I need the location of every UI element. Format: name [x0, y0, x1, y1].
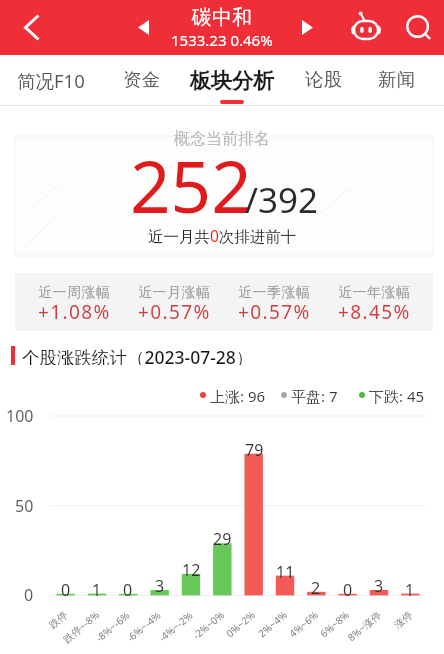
staticText: 0: [61, 579, 71, 601]
staticText: 1: [405, 579, 415, 601]
button[interactable]: 论股: [276, 55, 370, 106]
staticText: 11: [276, 561, 295, 583]
staticText: 0: [24, 584, 34, 606]
staticText: -4%~-2%: [156, 608, 196, 645]
button[interactable]: 下跌: 45: [359, 386, 425, 404]
staticText: 上涨: 96: [210, 386, 266, 404]
staticText: 2: [311, 577, 321, 599]
staticText: 100: [6, 405, 34, 427]
button[interactable]: 近一年涨幅: [324, 280, 424, 324]
staticText: 79: [245, 439, 264, 461]
staticText: 0: [123, 579, 133, 601]
staticText: 4%~6%: [286, 608, 321, 640]
staticText: 跌停: [46, 608, 70, 631]
button[interactable]: 近一周涨幅: [24, 280, 124, 324]
staticText: 近一季涨幅: [238, 284, 310, 302]
staticText: -8%~-6%: [93, 608, 133, 645]
staticText: 252: [130, 137, 252, 234]
staticText: 0: [343, 579, 353, 601]
staticText: +0.57%: [238, 299, 311, 325]
button[interactable]: Back: [10, 0, 54, 55]
staticText: 个股涨跌统计（2023-07-28）: [22, 345, 254, 365]
button[interactable]: 新闻: [349, 55, 443, 106]
staticText: 近一月涨幅: [138, 284, 210, 302]
staticText: 平盘: 7: [291, 386, 338, 404]
staticText: 1: [92, 579, 102, 601]
staticText: 碳中和: [192, 5, 252, 30]
button[interactable]: 近一季涨幅: [224, 280, 324, 324]
button[interactable]: 资金: [94, 55, 188, 106]
staticText: -2%~0%: [190, 608, 227, 642]
staticText: 3: [155, 575, 165, 597]
staticText: 29: [213, 528, 232, 550]
button[interactable]: Next sector: [291, 0, 323, 55]
staticText: 论股: [305, 68, 342, 91]
staticText: 2%~4%: [255, 608, 290, 640]
button[interactable]: 近一月涨幅: [124, 280, 224, 324]
staticText: 新闻: [378, 68, 415, 91]
staticText: +1.08%: [38, 299, 111, 325]
staticText: +8.45%: [338, 299, 411, 325]
staticText: 12: [182, 559, 201, 581]
staticText: 8%~涨停: [344, 608, 384, 644]
staticText: 下跌: 45: [369, 386, 425, 404]
button[interactable]: 简况F10: [4, 55, 98, 106]
staticText: 资金: [123, 68, 160, 91]
button[interactable]: Search: [400, 0, 438, 55]
staticText: 近一年涨幅: [338, 284, 410, 302]
staticText: /392: [245, 176, 319, 224]
staticText: 涨停: [391, 608, 415, 631]
staticText: 0%~2%: [223, 608, 258, 640]
staticText: 50: [15, 495, 34, 517]
staticText: 简况F10: [17, 68, 85, 93]
staticText: 板块分析: [190, 68, 274, 94]
button[interactable]: AI assistant: [346, 0, 386, 55]
staticText: 6%~8%: [317, 608, 352, 640]
button[interactable]: 平盘: 7: [281, 386, 338, 404]
staticText: 跌停~-8%: [60, 608, 102, 646]
button[interactable]: 板块分析: [185, 55, 279, 106]
button[interactable]: 上涨: 96: [200, 386, 266, 404]
staticText: 近一周涨幅: [38, 284, 110, 302]
staticText: 3: [374, 575, 384, 597]
staticText: 概念当前排名: [174, 129, 270, 149]
staticText: 近一月共0次排进前十: [148, 225, 297, 246]
staticText: 1533.23 0.46%: [171, 30, 273, 50]
button[interactable]: Previous sector: [127, 0, 159, 55]
staticText: -6%~-4%: [124, 608, 164, 645]
staticText: +0.57%: [138, 299, 211, 325]
